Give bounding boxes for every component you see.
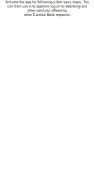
staticText: Activate the app by following a few easy… (5, 0, 89, 17)
